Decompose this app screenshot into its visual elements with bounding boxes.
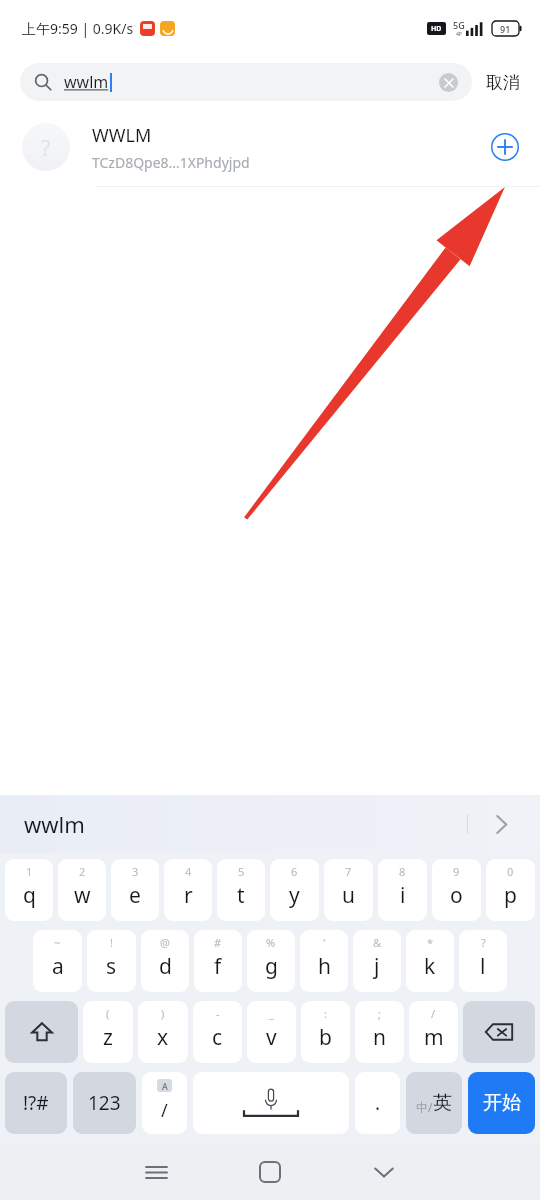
staticText: m xyxy=(424,1023,444,1052)
button[interactable]: 9 xyxy=(432,859,481,921)
button[interactable]: ? xyxy=(459,930,507,992)
button[interactable]: 取消 xyxy=(472,66,520,99)
button[interactable]: Switch language xyxy=(406,1072,462,1134)
button[interactable]: Clear xyxy=(439,73,458,92)
staticText: ? xyxy=(481,935,486,950)
staticText: 取消 xyxy=(486,72,520,93)
button[interactable]: wwlm xyxy=(20,63,472,101)
button[interactable]: Backspace xyxy=(463,1001,535,1063)
staticText: x xyxy=(157,1023,169,1052)
staticText: : xyxy=(324,1006,327,1021)
button[interactable]: ' xyxy=(300,930,348,992)
staticText: 9 xyxy=(453,864,460,879)
staticText: b xyxy=(319,1023,332,1052)
button[interactable]: ? xyxy=(0,108,540,186)
staticText: c xyxy=(212,1023,223,1052)
button[interactable]: 1 xyxy=(5,859,53,921)
button[interactable]: 4 xyxy=(164,859,212,921)
button[interactable]: 3 xyxy=(111,859,159,921)
staticText: p xyxy=(504,881,517,910)
staticText: e xyxy=(129,881,141,910)
button[interactable]: Space xyxy=(193,1072,349,1134)
button[interactable]: Slash xyxy=(142,1072,187,1134)
staticText: % xyxy=(266,935,276,950)
button[interactable]: !?# xyxy=(5,1072,67,1134)
staticText: 91 xyxy=(500,23,511,35)
staticText: ) xyxy=(161,1006,165,1021)
button[interactable]: Hide keyboard xyxy=(353,1144,415,1200)
staticText: @ xyxy=(160,935,170,950)
button[interactable]: Home xyxy=(239,1144,301,1200)
staticText: j xyxy=(374,952,380,981)
button[interactable]: ) xyxy=(138,1001,188,1063)
staticText: h xyxy=(318,952,331,981)
button[interactable]: & xyxy=(353,930,401,992)
button[interactable]: _ xyxy=(247,1001,296,1063)
staticText: ( xyxy=(106,1006,110,1021)
staticText: ! xyxy=(110,935,113,950)
button[interactable]: - xyxy=(193,1001,242,1063)
staticText: . xyxy=(375,1090,381,1116)
button[interactable]: Recents xyxy=(125,1144,187,1200)
button[interactable]: 5 xyxy=(217,859,265,921)
button[interactable]: ~ xyxy=(33,930,82,992)
button[interactable]: ! xyxy=(87,930,136,992)
staticText: 5 xyxy=(238,864,245,879)
staticText: l xyxy=(480,952,486,981)
staticText: t xyxy=(237,881,245,910)
staticText: - xyxy=(216,1006,220,1021)
staticText: 4P xyxy=(456,31,462,38)
button[interactable]: wwlm xyxy=(0,795,540,853)
staticText: s xyxy=(106,952,117,981)
button[interactable]: Shift xyxy=(5,1001,78,1063)
staticText: / xyxy=(428,1099,433,1115)
staticText: WWLM xyxy=(92,123,152,148)
staticText: / xyxy=(161,1098,168,1123)
staticText: w xyxy=(74,881,91,910)
staticText: & xyxy=(373,935,382,950)
staticText: TCzD8Qpe8…1XPhdyjpd xyxy=(92,153,250,172)
button[interactable]: ; xyxy=(355,1001,404,1063)
button[interactable]: 0 xyxy=(486,859,535,921)
staticText: 8 xyxy=(399,864,406,879)
staticText: d xyxy=(159,952,172,981)
button[interactable]: ( xyxy=(83,1001,133,1063)
staticText: / xyxy=(431,1006,436,1021)
button[interactable]: 6 xyxy=(270,859,319,921)
staticText: k xyxy=(424,952,436,981)
button[interactable]: 7 xyxy=(324,859,373,921)
staticText: f xyxy=(214,952,222,981)
button[interactable]: More candidates xyxy=(486,809,516,839)
staticText: 4 xyxy=(185,864,192,879)
button[interactable]: 123 xyxy=(73,1072,136,1134)
button[interactable]: % xyxy=(247,930,295,992)
staticText: u xyxy=(342,881,355,910)
button[interactable]: # xyxy=(194,930,242,992)
button[interactable]: / xyxy=(409,1001,458,1063)
staticText: ' xyxy=(323,935,326,950)
staticText: v xyxy=(266,1023,277,1052)
button[interactable]: 8 xyxy=(378,859,427,921)
button[interactable]: : xyxy=(301,1001,350,1063)
staticText: 5G xyxy=(453,19,465,31)
staticText: ; xyxy=(378,1006,381,1021)
staticText: wwlm xyxy=(64,71,109,93)
staticText: * xyxy=(427,935,434,950)
button[interactable]: * xyxy=(406,930,454,992)
button[interactable]: Add xyxy=(488,130,522,164)
button[interactable]: @ xyxy=(141,930,189,992)
button[interactable]: 开始 xyxy=(468,1072,535,1134)
staticText: 中 xyxy=(416,1100,428,1115)
button[interactable]: . xyxy=(355,1072,400,1134)
staticText: q xyxy=(23,881,36,910)
staticText: n xyxy=(373,1023,386,1052)
staticText: 上午9:59 | 0.9K/s xyxy=(22,19,134,38)
staticText: 3 xyxy=(132,864,139,879)
staticText: ~ xyxy=(54,935,61,950)
staticText: r xyxy=(184,881,193,910)
staticText: A xyxy=(162,1080,168,1092)
staticText: 英 xyxy=(433,1091,452,1115)
staticText: 0 xyxy=(507,864,514,879)
staticText: 开始 xyxy=(483,1091,521,1115)
button[interactable]: 2 xyxy=(58,859,106,921)
